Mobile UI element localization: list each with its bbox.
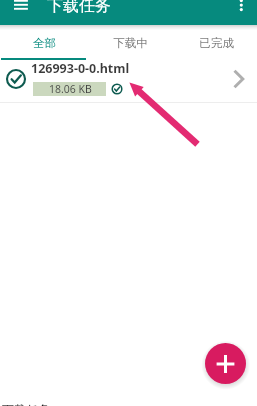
staticText: 全部: [33, 36, 56, 50]
staticText: 已完成: [199, 36, 234, 50]
staticText: 下载任务: [47, 0, 111, 16]
staticText: 下载任务: [2, 402, 50, 406]
staticText: 下载中: [113, 36, 148, 50]
staticText: 18.06 KB: [49, 82, 92, 96]
button[interactable]: 已完成: [171, 25, 257, 59]
button[interactable]: 126993-0-0.html: [0, 59, 257, 102]
button[interactable]: Menu: [9, 0, 33, 15]
staticText: 126993-0-0.html: [31, 60, 130, 77]
button[interactable]: 全部: [0, 25, 85, 59]
button[interactable]: 下载中: [85, 25, 171, 59]
button[interactable]: Add: [205, 343, 246, 384]
button[interactable]: More options: [229, 0, 254, 19]
